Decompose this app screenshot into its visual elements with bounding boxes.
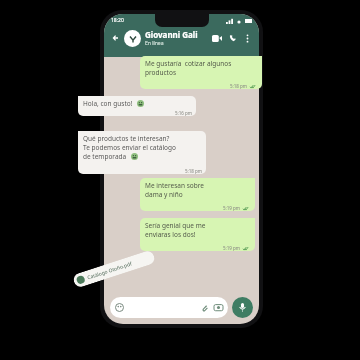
staticText: Te podemos enviar el catálogo: [83, 143, 176, 152]
staticText: dama y niño: [145, 190, 183, 199]
staticText: 5:18 pm: [230, 83, 248, 89]
button[interactable]: More options: [241, 32, 254, 45]
button[interactable]: Back: [109, 31, 123, 45]
staticText: 5:19 pm: [223, 205, 241, 211]
staticText: Me gustaría cotizar algunos: [145, 59, 232, 68]
button[interactable]: Me gustaría cotizar algunos: [140, 56, 262, 89]
button[interactable]: Qué productos te interesan?: [78, 131, 206, 174]
button[interactable]: Video call: [210, 31, 224, 45]
staticText: Hola, con gusto!: [83, 99, 133, 108]
button[interactable]: Call: [226, 31, 240, 45]
button[interactable]: Sería genial que me: [140, 218, 255, 251]
button[interactable]: [110, 297, 228, 318]
staticText: 5:19 pm: [223, 245, 241, 251]
staticText: de temporada: [83, 152, 127, 161]
staticText: En línea: [145, 40, 164, 47]
staticText: Qué productos te interesan?: [83, 134, 170, 143]
staticText: Giovanni Gali: [145, 29, 198, 40]
staticText: 5:16 pm: [174, 110, 192, 116]
button[interactable]: Hola, con gusto!: [78, 96, 196, 116]
button[interactable]: Me interesan sobre: [140, 178, 255, 211]
button[interactable]: Voice message: [232, 297, 253, 318]
staticText: enviaras los dos!: [145, 230, 196, 239]
staticText: Sería genial que me: [145, 221, 206, 230]
staticText: 5:18 pm: [184, 168, 202, 174]
button[interactable]: Catálogo Otoño.pdf: [72, 249, 156, 289]
staticText: Catálogo Otoño.pdf: [86, 260, 133, 281]
staticText: Me interesan sobre: [145, 181, 204, 190]
staticText: 18:20: [111, 17, 124, 24]
staticText: productos: [145, 68, 177, 77]
